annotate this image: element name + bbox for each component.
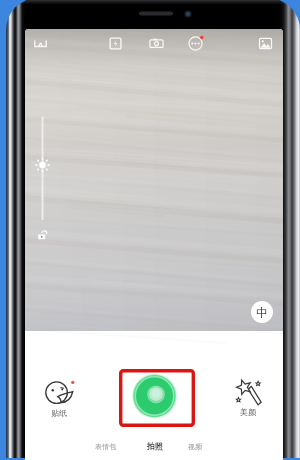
button[interactable]: 贴纸	[43, 377, 75, 419]
button[interactable]: Exposure	[33, 111, 52, 227]
staticText: 表情包	[95, 442, 116, 451]
button[interactable]: 美颜	[233, 378, 263, 420]
button[interactable]: More options	[185, 33, 206, 54]
button[interactable]: Gallery	[255, 34, 275, 53]
staticText: 视频	[188, 442, 202, 451]
staticText: 拍照	[147, 441, 163, 451]
button[interactable]: 视频	[185, 440, 205, 453]
button[interactable]: Shutter	[132, 374, 177, 419]
button[interactable]: 表情包	[91, 440, 120, 453]
button[interactable]: Flash off	[30, 34, 50, 53]
staticText: 中	[256, 305, 268, 320]
button[interactable]: Lock exposure	[36, 228, 49, 241]
button[interactable]: Watermark	[251, 301, 273, 323]
staticText: 美颜	[240, 407, 256, 417]
button[interactable]: 拍照	[144, 439, 165, 453]
button[interactable]: HDR	[105, 34, 125, 53]
staticText: 贴纸	[51, 408, 67, 418]
button[interactable]: Switch camera	[146, 34, 167, 53]
